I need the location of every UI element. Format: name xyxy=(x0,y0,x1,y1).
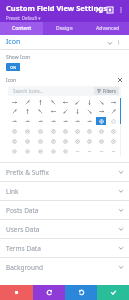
button[interactable]: Icon 41 xyxy=(72,137,82,145)
staticText: Filters xyxy=(103,88,116,94)
button[interactable]: Stop xyxy=(0,285,33,300)
staticText: Advanced xyxy=(96,25,120,32)
staticText: Search Icons... xyxy=(13,88,44,94)
staticText: Background xyxy=(6,263,43,272)
button[interactable]: Icon 10 xyxy=(22,108,33,115)
staticText: ON xyxy=(10,65,17,70)
other: Collapse xyxy=(105,38,114,47)
button[interactable]: Icon 37 xyxy=(22,137,33,145)
staticText: Icon xyxy=(6,37,21,47)
button[interactable]: Icon 22 xyxy=(60,117,70,125)
button[interactable]: Icon 35 xyxy=(108,127,118,135)
button[interactable]: Design xyxy=(43,22,86,35)
button[interactable]: More options xyxy=(115,4,126,15)
button[interactable]: Clear icon xyxy=(116,76,124,84)
button[interactable]: Icon 28 xyxy=(22,127,33,135)
button[interactable]: Filters xyxy=(97,87,116,95)
staticText: Posts Data xyxy=(6,206,39,215)
button[interactable]: Icon 52 xyxy=(96,147,106,155)
button[interactable]: Responsive view xyxy=(104,4,115,15)
button[interactable]: Icon 3 xyxy=(48,99,58,106)
button[interactable]: Icon 39 xyxy=(48,137,58,145)
button[interactable]: Icon 53 xyxy=(108,147,118,155)
button[interactable]: Icon 11 xyxy=(35,108,46,115)
button[interactable]: Icon 38 xyxy=(35,137,46,145)
button[interactable]: Link xyxy=(6,182,123,200)
button[interactable]: ON xyxy=(6,63,31,71)
button[interactable]: Icon 27 xyxy=(9,127,20,135)
staticText: Prefix & Suffix xyxy=(6,168,49,177)
button[interactable]: Undo xyxy=(33,285,65,300)
button[interactable]: Icon 6 xyxy=(84,99,94,106)
button[interactable]: Prefix & Suffix xyxy=(6,163,123,181)
button[interactable]: Icon 1 xyxy=(22,99,33,106)
staticText: Design xyxy=(56,25,73,32)
button[interactable]: Advanced xyxy=(86,22,129,35)
button[interactable]: Icon 16 xyxy=(96,108,106,115)
staticText: Users Data xyxy=(6,225,40,234)
button[interactable]: Icon 24 xyxy=(84,117,94,125)
button[interactable]: Icon 51 xyxy=(84,147,94,155)
button[interactable]: Icon 29 xyxy=(35,127,46,135)
button[interactable]: Save xyxy=(97,285,129,300)
button[interactable]: Icon 18 xyxy=(9,117,20,125)
button[interactable]: Icon 0 xyxy=(9,99,20,106)
button[interactable]: Icon 14 xyxy=(72,108,82,115)
button[interactable]: Icon 2 xyxy=(35,99,46,106)
button[interactable]: Icon 26 xyxy=(108,117,118,125)
button[interactable]: Icon 31 xyxy=(60,127,70,135)
button[interactable]: Icon 25 xyxy=(96,117,106,125)
button[interactable]: Icon 23 xyxy=(72,117,82,125)
button[interactable]: Icon 19 xyxy=(22,117,33,125)
button[interactable]: Icon xyxy=(6,35,123,49)
button[interactable]: Icon 36 xyxy=(9,137,20,145)
other: Section menu xyxy=(114,38,123,47)
button[interactable]: Icon 32 xyxy=(72,127,82,135)
button[interactable]: Icon 43 xyxy=(96,137,106,145)
staticText: Show Icon xyxy=(6,54,31,61)
button[interactable]: Icon 46 xyxy=(22,147,33,155)
staticText: Preset: Default ▾ xyxy=(6,15,41,21)
button[interactable]: Posts Data xyxy=(6,201,123,219)
button[interactable]: Icon 15 xyxy=(84,108,94,115)
staticText: Icon xyxy=(6,77,17,84)
button[interactable]: Icon 30 xyxy=(48,127,58,135)
button[interactable]: Icon 50 xyxy=(72,147,82,155)
button[interactable]: Icon 4 xyxy=(60,99,70,106)
button[interactable]: Icon 47 xyxy=(35,147,46,155)
button[interactable]: Icon 42 xyxy=(84,137,94,145)
button[interactable]: Close xyxy=(93,4,104,15)
staticText: Content xyxy=(12,25,32,32)
button[interactable]: Icon 48 xyxy=(48,147,58,155)
button[interactable]: Content xyxy=(0,22,43,35)
button[interactable]: Icon 34 xyxy=(96,127,106,135)
button[interactable]: Users Data xyxy=(6,220,123,238)
staticText: Link xyxy=(6,187,19,196)
button[interactable]: Icon 44 xyxy=(108,137,118,145)
button[interactable]: Icon 21 xyxy=(48,117,58,125)
button[interactable]: Icon 13 xyxy=(60,108,70,115)
button[interactable]: Icon 5 xyxy=(72,99,82,106)
button[interactable]: Icon 45 xyxy=(9,147,20,155)
button[interactable]: Icon 17 xyxy=(108,108,118,115)
button[interactable]: Icon 8 xyxy=(108,99,118,106)
button[interactable]: Background xyxy=(6,258,123,276)
staticText: Custom Field View Settings xyxy=(6,3,107,13)
button[interactable]: Icon 9 xyxy=(9,108,20,115)
staticText: Terms Data xyxy=(6,244,41,253)
button[interactable]: Icon 49 xyxy=(60,147,70,155)
button[interactable]: Icon 33 xyxy=(84,127,94,135)
button[interactable]: Search Icons... xyxy=(8,86,121,96)
button[interactable]: Icon 40 xyxy=(60,137,70,145)
button[interactable]: Icon 7 xyxy=(96,99,106,106)
button[interactable]: Icon 20 xyxy=(35,117,46,125)
button[interactable]: Terms Data xyxy=(6,239,123,257)
button[interactable]: Redo xyxy=(65,285,97,300)
button[interactable]: Icon 12 xyxy=(48,108,58,115)
